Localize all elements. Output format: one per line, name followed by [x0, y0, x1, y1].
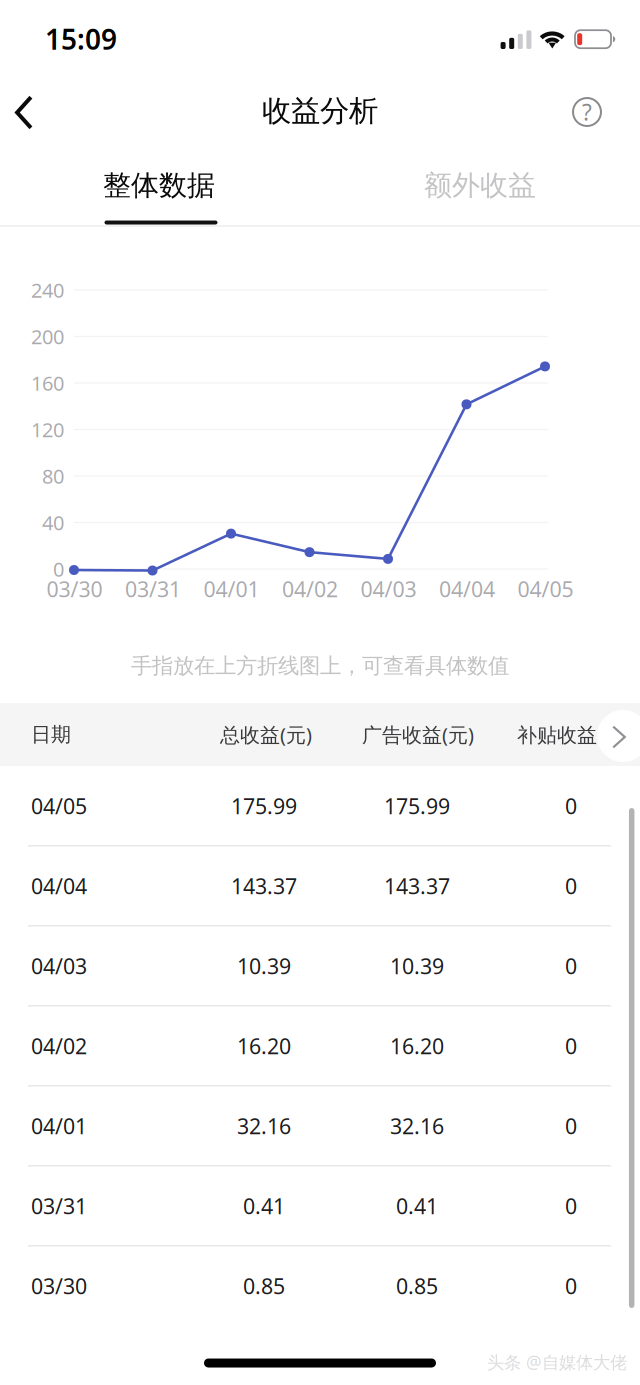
staticText: 0 — [565, 952, 577, 980]
staticText: 143.37 — [231, 872, 297, 900]
staticText: 04/05 — [517, 575, 573, 603]
button[interactable]: More columns — [597, 710, 640, 762]
staticText: 03/31 — [31, 1192, 87, 1220]
button[interactable]: 04/02 — [0, 1006, 640, 1086]
staticText: 80 — [42, 463, 64, 489]
button[interactable]: 整体数据 — [0, 146, 320, 239]
staticText: ? — [582, 97, 592, 127]
staticText: 143.37 — [384, 872, 450, 900]
staticText: 总收益(元) — [220, 721, 312, 748]
staticText: 40 — [42, 509, 64, 536]
button[interactable]: Help — [559, 84, 615, 140]
staticText: 240 — [31, 277, 64, 303]
staticText: 广告收益(元) — [362, 721, 474, 748]
staticText: 头条 @自媒体大佬 — [487, 1350, 627, 1373]
staticText: 04/04 — [439, 575, 495, 603]
staticText: 手指放在上方折线图上，可查看具体数值 — [131, 653, 509, 679]
staticText: 175.99 — [384, 792, 450, 820]
staticText: 10.39 — [237, 952, 291, 980]
button[interactable]: 04/03 — [0, 926, 640, 1006]
staticText: 04/02 — [282, 575, 338, 603]
staticText: 04/05 — [31, 792, 87, 820]
staticText: 32.16 — [390, 1112, 444, 1140]
staticText: 0.85 — [243, 1272, 285, 1300]
button[interactable]: 04/01 — [0, 1086, 640, 1166]
staticText: 0 — [565, 1192, 577, 1220]
staticText: 0 — [565, 792, 577, 820]
button[interactable]: 03/30 — [0, 1246, 640, 1326]
staticText: 0 — [565, 1032, 577, 1060]
staticText: 03/30 — [31, 1272, 87, 1300]
staticText: 04/04 — [31, 872, 87, 900]
staticText: 0.41 — [396, 1192, 438, 1220]
staticText: 16.20 — [237, 1032, 291, 1060]
staticText: 额外收益 — [424, 168, 536, 203]
staticText: 日期 — [31, 722, 71, 747]
staticText: 0 — [565, 1272, 577, 1300]
staticText: 16.20 — [390, 1032, 444, 1060]
staticText: 03/30 — [46, 575, 102, 603]
staticText: 15:09 — [45, 20, 117, 58]
staticText: 160 — [31, 370, 64, 396]
staticText: 收益分析 — [262, 93, 378, 129]
staticText: 0.41 — [243, 1192, 285, 1220]
staticText: 0 — [565, 1112, 577, 1140]
staticText: 03/31 — [125, 575, 181, 603]
staticText: 32.16 — [237, 1112, 291, 1140]
staticText: 04/03 — [31, 952, 87, 980]
staticText: 0 — [53, 556, 64, 582]
staticText: 04/01 — [203, 575, 259, 603]
staticText: 0 — [565, 872, 577, 900]
staticText: 120 — [31, 416, 64, 443]
staticText: 10.39 — [390, 952, 444, 980]
staticText: 整体数据 — [103, 168, 215, 203]
staticText: 200 — [31, 323, 64, 350]
staticText: 04/02 — [31, 1032, 87, 1060]
button[interactable]: Back — [0, 79, 55, 145]
button[interactable]: 04/05 — [0, 766, 640, 846]
staticText: 04/01 — [31, 1112, 87, 1140]
button[interactable]: 额外收益 — [320, 146, 640, 239]
staticText: 175.99 — [231, 792, 297, 820]
button[interactable]: 04/04 — [0, 846, 640, 926]
staticText: 0.85 — [396, 1272, 438, 1300]
staticText: 04/03 — [360, 575, 416, 603]
staticText: 补贴收益( — [517, 721, 603, 748]
button[interactable]: 03/31 — [0, 1166, 640, 1246]
